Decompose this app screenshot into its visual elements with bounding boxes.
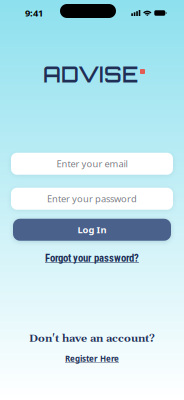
staticText: ADVISE (43, 61, 138, 88)
staticText: Enter your email (56, 158, 127, 170)
staticText: Enter your password (47, 193, 137, 205)
staticText: Register Here (65, 353, 119, 364)
staticText: Log In (77, 224, 106, 236)
button[interactable]: Log In (13, 219, 171, 241)
button[interactable]: Forgot your password? (45, 252, 139, 264)
staticText: 9:41 (25, 7, 43, 19)
staticText: Forgot your password? (45, 252, 139, 264)
staticText: Don't have an account? (29, 332, 155, 345)
button[interactable]: Enter your password (11, 188, 173, 210)
button[interactable]: Enter your email (11, 153, 173, 175)
button[interactable]: Register Here (65, 353, 119, 364)
